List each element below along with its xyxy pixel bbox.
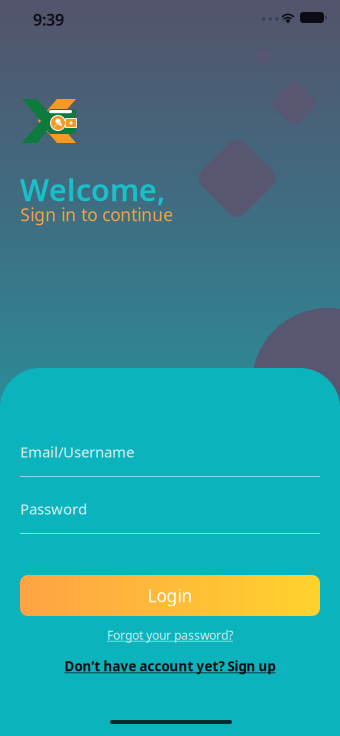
- button[interactable]: Forgot your password?: [20, 627, 320, 643]
- staticText: Welcome,: [20, 169, 166, 210]
- button[interactable]: Don’t have account yet? Sign up: [20, 657, 320, 675]
- staticText: Login: [147, 584, 192, 607]
- button[interactable]: Login: [20, 575, 320, 616]
- staticText: Forgot your password?: [107, 627, 233, 643]
- staticText: Email/Username: [20, 442, 134, 461]
- staticText: Sign in to continue: [20, 203, 173, 226]
- staticText: Password: [20, 499, 87, 518]
- staticText: 9:39: [33, 9, 64, 30]
- staticText: Don’t have account yet? Sign up: [64, 657, 275, 675]
